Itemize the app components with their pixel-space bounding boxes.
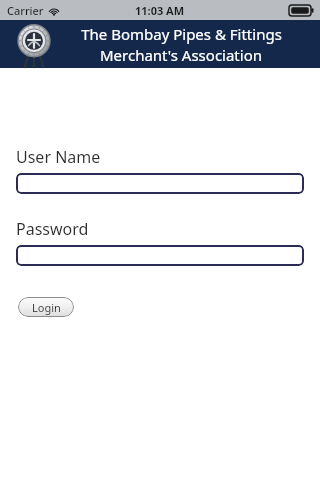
staticText: The Bombay Pipes & Fittings	[81, 24, 282, 44]
button[interactable]: Login	[18, 297, 74, 317]
button[interactable]: User Name	[16, 173, 304, 194]
staticText: Merchant's Association	[100, 45, 262, 65]
staticText: 11:03 AM	[135, 3, 185, 18]
staticText: Carrier	[7, 3, 44, 18]
staticText: Password	[16, 218, 89, 240]
staticText: User Name	[16, 146, 101, 168]
button[interactable]: Password	[16, 245, 304, 266]
staticText: Login	[32, 300, 61, 315]
